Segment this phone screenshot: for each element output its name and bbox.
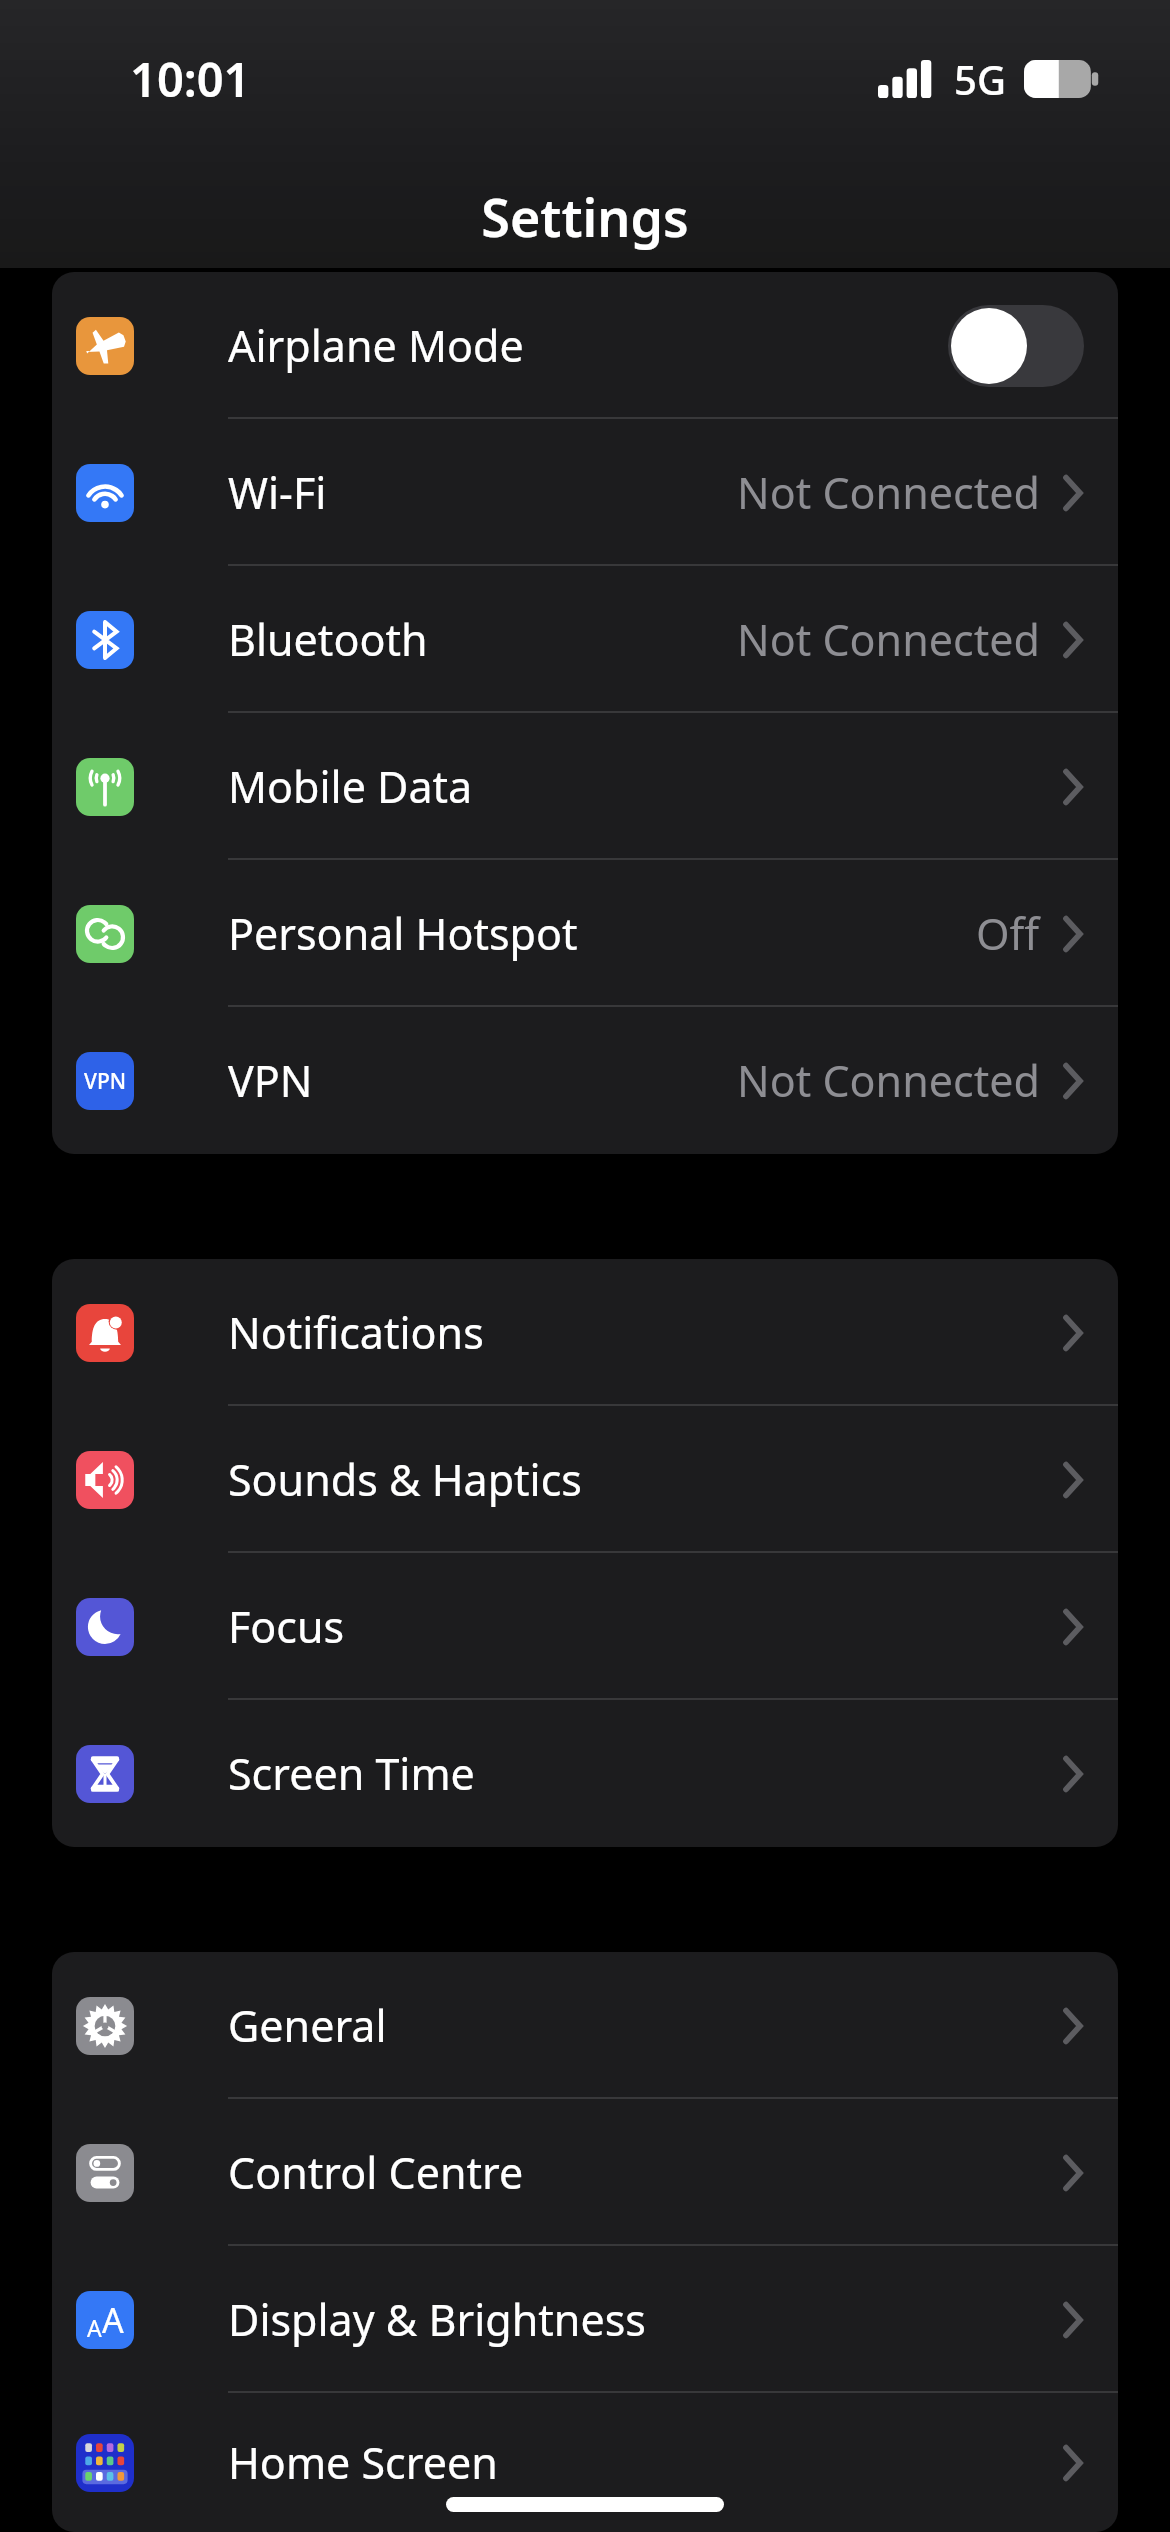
staticText: Airplane Mode (228, 316, 524, 375)
staticText: Not Connected (737, 610, 1040, 669)
staticText: Focus (228, 1597, 345, 1656)
staticText: 10:01 (130, 47, 251, 111)
staticText: Wi-Fi (228, 463, 327, 522)
staticText: Not Connected (737, 463, 1040, 522)
button[interactable]: Focus (52, 1553, 1118, 1700)
button[interactable]: A (52, 2246, 1118, 2393)
button[interactable]: Sounds & Haptics (52, 1406, 1118, 1553)
button[interactable]: Wi-Fi (52, 419, 1118, 566)
staticText: Home Screen (228, 2433, 498, 2492)
staticText: A (102, 2297, 124, 2343)
staticText: A (87, 2312, 102, 2343)
button[interactable]: Bluetooth (52, 566, 1118, 713)
staticText: VPN (84, 1067, 127, 1096)
button[interactable]: Notifications (52, 1259, 1118, 1406)
staticText: Not Connected (737, 1051, 1040, 1110)
staticText: VPN (228, 1051, 313, 1110)
staticText: Mobile Data (228, 757, 473, 816)
staticText: Notifications (228, 1303, 484, 1362)
staticText: Display & Brightness (228, 2290, 646, 2349)
staticText: General (228, 1996, 387, 2055)
button[interactable]: Screen Time (52, 1700, 1118, 1847)
button[interactable]: VPN (52, 1007, 1118, 1154)
staticText: Settings (0, 181, 1170, 252)
staticText: 5G (954, 52, 1006, 106)
staticText: Sounds & Haptics (228, 1450, 582, 1509)
staticText: Personal Hotspot (228, 904, 578, 963)
button[interactable]: Control Centre (52, 2099, 1118, 2246)
button[interactable]: Personal Hotspot (52, 860, 1118, 1007)
staticText: Bluetooth (228, 610, 428, 669)
button[interactable]: Airplane Mode, off (948, 305, 1084, 387)
staticText: Control Centre (228, 2143, 524, 2202)
staticText: Off (976, 904, 1040, 963)
button[interactable]: Home Screen (52, 2393, 1118, 2532)
button[interactable]: Mobile Data (52, 713, 1118, 860)
button[interactable]: General (52, 1952, 1118, 2099)
staticText: Screen Time (228, 1744, 475, 1803)
button[interactable]: Airplane Mode (52, 272, 1118, 419)
